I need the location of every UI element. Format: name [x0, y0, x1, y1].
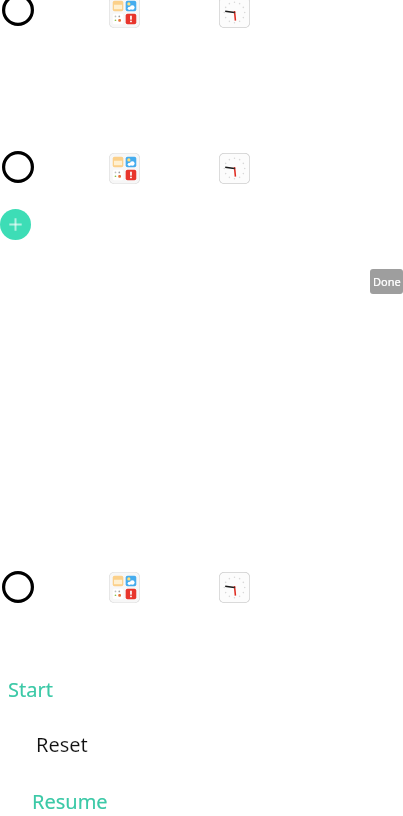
button[interactable]: Clock — [219, 153, 250, 184]
button[interactable]: Add — [0, 209, 31, 240]
button[interactable]: Select — [2, 151, 34, 183]
button[interactable]: Select — [2, 0, 34, 26]
button[interactable]: Select — [2, 571, 34, 603]
button[interactable]: Apps — [109, 153, 140, 184]
staticText: Reset — [36, 731, 88, 758]
button[interactable]: Clock — [219, 0, 250, 28]
button[interactable]: Done — [370, 269, 403, 294]
button[interactable]: Resume — [32, 788, 108, 815]
staticText: Start — [8, 676, 53, 703]
button[interactable]: Apps — [109, 0, 140, 28]
staticText: Done — [373, 274, 401, 289]
button[interactable]: Reset — [36, 731, 88, 758]
staticText: Resume — [32, 788, 108, 815]
button[interactable]: Start — [8, 676, 53, 703]
button[interactable]: Apps — [109, 572, 140, 603]
button[interactable]: Clock — [219, 572, 250, 603]
